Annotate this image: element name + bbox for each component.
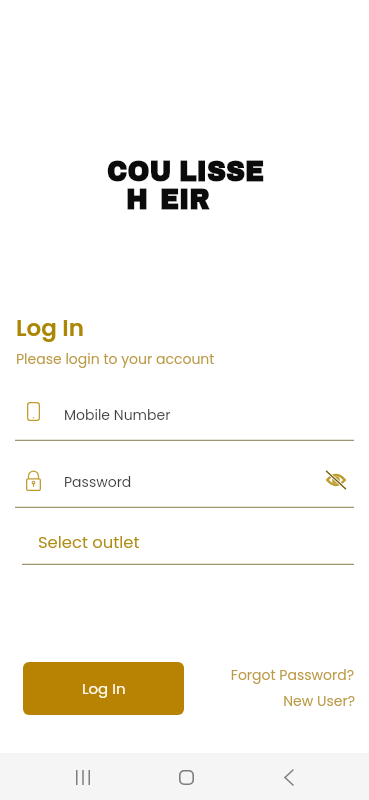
- staticText: Select outlet: [38, 531, 140, 554]
- staticText: Forgot Password?: [230, 665, 354, 685]
- staticText: Log In: [82, 678, 126, 699]
- button[interactable]: Forgot Password?: [224, 662, 354, 688]
- staticText: Log In: [16, 312, 84, 344]
- staticText: Please login to your account: [16, 349, 215, 369]
- staticText: COU: [107, 155, 172, 188]
- staticText: LISSE: [179, 155, 264, 188]
- staticText: H: [126, 183, 148, 216]
- button[interactable]: Password: [15, 464, 354, 507]
- button[interactable]: Recent apps: [58, 755, 108, 800]
- button[interactable]: Mobile Number: [15, 396, 354, 440]
- button[interactable]: Select outlet: [22, 527, 354, 563]
- button[interactable]: Show password: [322, 466, 350, 494]
- staticText: New User?: [283, 691, 355, 711]
- button[interactable]: New User?: [224, 688, 355, 714]
- staticText: Password: [64, 472, 132, 492]
- button[interactable]: Back: [264, 755, 314, 800]
- button[interactable]: Log In: [23, 662, 184, 715]
- staticText: Mobile Number: [64, 405, 171, 425]
- button[interactable]: Home: [161, 755, 211, 800]
- staticText: EIR: [160, 183, 210, 216]
